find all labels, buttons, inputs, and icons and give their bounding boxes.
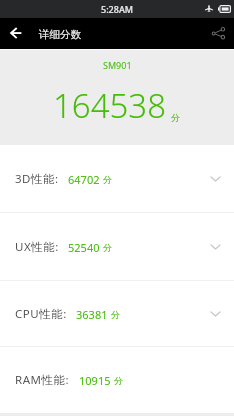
staticText: 36381: [76, 307, 108, 322]
button[interactable]: Share: [203, 18, 234, 49]
staticText: SM901: [103, 59, 132, 71]
staticText: CPU性能:: [15, 306, 67, 322]
button[interactable]: Back: [0, 18, 31, 49]
staticText: 分: [171, 112, 180, 123]
staticText: UX性能:: [15, 239, 59, 255]
button[interactable]: RAM性能:: [0, 347, 234, 413]
button[interactable]: CPU性能:: [0, 281, 234, 346]
button[interactable]: UX性能:: [0, 213, 234, 280]
staticText: 3D性能:: [15, 171, 59, 187]
staticText: RAM性能:: [15, 372, 70, 388]
staticText: 分: [103, 242, 112, 253]
staticText: 分: [103, 174, 112, 185]
button[interactable]: 3D性能:: [0, 145, 234, 212]
staticText: 164538: [53, 83, 167, 128]
staticText: 10915: [79, 373, 111, 388]
staticText: 5:28AM: [101, 3, 134, 15]
staticText: 52540: [68, 240, 100, 255]
staticText: 64702: [68, 172, 100, 187]
staticText: 详细分数: [39, 28, 81, 41]
staticText: 分: [111, 309, 120, 320]
staticText: 分: [114, 375, 123, 386]
